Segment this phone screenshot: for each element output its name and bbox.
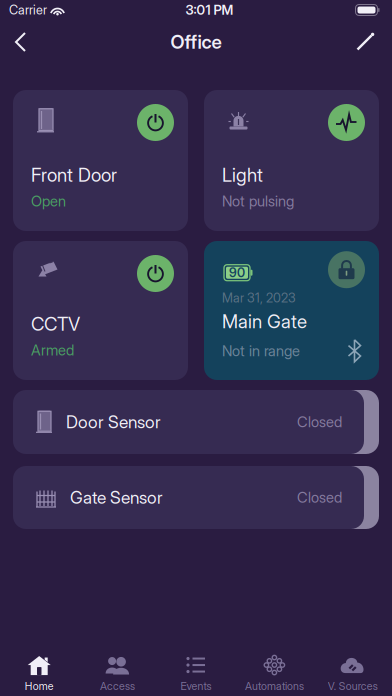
staticText: Home: [25, 679, 54, 692]
button[interactable]: 90: [204, 241, 379, 380]
button[interactable]: Events: [157, 645, 235, 696]
staticText: CCTV: [31, 313, 80, 335]
button[interactable]: V. Sources: [314, 645, 392, 696]
staticText: Carrier: [9, 2, 47, 18]
button[interactable]: Access: [78, 645, 157, 696]
staticText: Mar 31, 2023: [222, 290, 296, 305]
button[interactable]: Front Door: [13, 90, 188, 231]
button[interactable]: Door Sensor: [0, 390, 392, 454]
staticText: Main Gate: [222, 310, 307, 333]
staticText: Office: [170, 31, 221, 53]
button[interactable]: Home: [0, 645, 78, 696]
staticText: 90: [229, 265, 245, 280]
staticText: Armed: [31, 341, 74, 359]
staticText: Front Door: [31, 164, 117, 186]
staticText: Light: [222, 164, 263, 186]
staticText: Open: [31, 192, 66, 210]
staticText: Closed: [297, 413, 342, 431]
button[interactable]: Back: [10, 28, 40, 56]
staticText: 3:01 PM: [185, 2, 233, 18]
staticText: Events: [180, 679, 211, 692]
staticText: Door Sensor: [66, 411, 161, 432]
button[interactable]: Edit: [354, 30, 376, 54]
staticText: Not in range: [222, 342, 300, 360]
staticText: Access: [100, 679, 135, 692]
button[interactable]: Gate Sensor: [0, 466, 392, 529]
staticText: Closed: [297, 489, 342, 506]
staticText: Gate Sensor: [70, 487, 163, 508]
button[interactable]: Light: [204, 90, 379, 231]
staticText: Automations: [245, 679, 304, 692]
button[interactable]: CCTV: [13, 241, 188, 380]
staticText: Not pulsing: [222, 192, 294, 210]
staticText: V. Sources: [328, 679, 378, 692]
button[interactable]: Automations: [235, 645, 314, 696]
